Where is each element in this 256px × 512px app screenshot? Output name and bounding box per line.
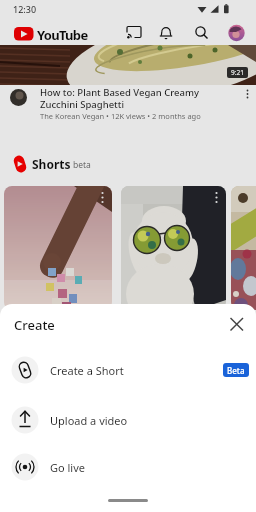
staticText: Create a Short xyxy=(50,363,124,378)
staticText: Create xyxy=(14,316,55,334)
staticText: Beta xyxy=(227,365,245,376)
staticText: YouTube xyxy=(37,26,88,44)
staticText: The Korean Vegan • 12K views • 2 months … xyxy=(40,111,201,121)
staticText: beta xyxy=(73,159,91,171)
staticText: How to: Plant Based Vegan Creamy Zucchin… xyxy=(40,86,199,111)
staticText: 12:30 xyxy=(13,3,37,15)
staticText: Upload a video xyxy=(50,413,128,428)
staticText: 9:21 xyxy=(231,68,244,77)
staticText: Shorts xyxy=(32,156,71,172)
staticText: Go live xyxy=(50,460,85,475)
